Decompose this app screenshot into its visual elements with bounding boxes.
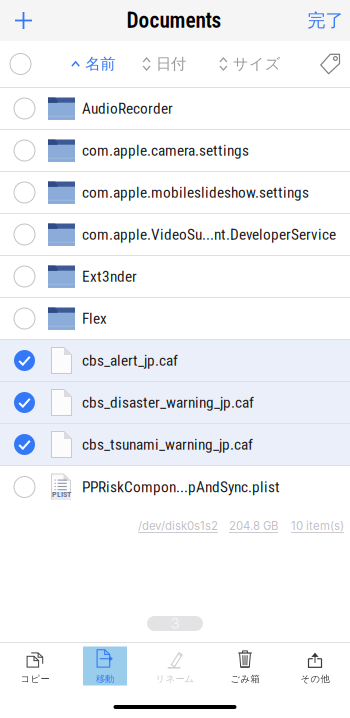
button[interactable]: 204.8 GB	[229, 519, 278, 533]
staticText: サイズ	[233, 54, 281, 74]
button[interactable]: AudioRecorder	[0, 88, 350, 130]
staticText: PLIST	[52, 490, 71, 499]
staticText: cbs_alert_jp.caf	[82, 351, 178, 369]
staticText: 移動	[96, 673, 114, 685]
button[interactable]: 名前	[69, 41, 117, 87]
button[interactable]: com.apple.camera.settings	[0, 130, 350, 172]
button[interactable]: com.apple.VideoSu...nt.DeveloperService	[0, 214, 350, 256]
staticText: com.apple.camera.settings	[82, 141, 249, 159]
button[interactable]: cbs_alert_jp.caf	[0, 340, 350, 382]
staticText: 名前	[85, 54, 115, 74]
button[interactable]: 10 item(s)	[291, 519, 344, 533]
staticText: 3	[170, 615, 179, 632]
staticText: その他	[300, 673, 329, 685]
staticText: PPRiskCompon...pAndSync.plist	[82, 478, 280, 496]
staticText: cbs_tsunami_warning_jp.caf	[82, 435, 253, 453]
staticText: 完了	[307, 9, 343, 32]
button[interactable]: リネーム	[140, 643, 210, 688]
staticText: 日付	[156, 54, 186, 74]
button[interactable]: Select all	[0, 41, 41, 87]
button[interactable]: 移動	[70, 643, 140, 688]
button[interactable]: Ext3nder	[0, 256, 350, 298]
staticText: 10 item(s)	[291, 519, 344, 533]
button[interactable]: 完了	[301, 0, 350, 41]
staticText: リネーム	[155, 673, 194, 685]
staticText: AudioRecorder	[82, 99, 173, 117]
staticText: com.apple.mobileslideshow.settings	[82, 183, 309, 201]
button[interactable]: その他	[280, 643, 350, 688]
button[interactable]: 日付	[140, 41, 188, 87]
button[interactable]: ごみ箱	[210, 643, 280, 688]
button[interactable]: Flex	[0, 298, 350, 340]
staticText: Documents	[126, 8, 221, 33]
button[interactable]: コピー	[0, 643, 70, 688]
staticText: Flex	[82, 309, 107, 327]
button[interactable]: サイズ	[217, 41, 283, 87]
staticText: ごみ箱	[230, 673, 259, 685]
button[interactable]: PLIST	[0, 466, 350, 508]
button[interactable]: cbs_disaster_warning_jp.caf	[0, 382, 350, 424]
staticText: /dev/disk0s1s2	[138, 519, 218, 533]
button[interactable]: com.apple.mobileslideshow.settings	[0, 172, 350, 214]
staticText: 204.8 GB	[229, 519, 278, 533]
staticText: com.apple.VideoSu...nt.DeveloperService	[82, 225, 336, 243]
button[interactable]: /dev/disk0s1s2	[138, 519, 218, 533]
button[interactable]: Tags	[316, 41, 345, 87]
staticText: Ext3nder	[82, 267, 137, 285]
staticText: コピー	[20, 673, 49, 685]
button[interactable]: cbs_tsunami_warning_jp.caf	[0, 424, 350, 466]
button[interactable]: Add	[0, 0, 47, 41]
staticText: cbs_disaster_warning_jp.caf	[82, 393, 254, 411]
